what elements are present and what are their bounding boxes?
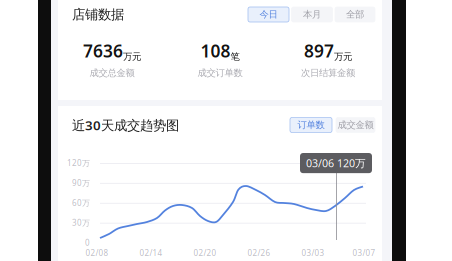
staticText: 02/20 — [193, 248, 216, 258]
staticText: 60万 — [72, 197, 90, 208]
button[interactable]: 本月 — [291, 7, 332, 22]
staticText: 03/06 120万 — [306, 156, 366, 170]
button[interactable]: 订单数 — [290, 117, 332, 132]
staticText: 7636 — [83, 39, 123, 62]
staticText: 次日结算金额 — [301, 67, 355, 79]
staticText: 成交金额 — [337, 119, 373, 131]
staticText: 近30天成交趋势图 — [72, 116, 179, 134]
staticText: 897 — [304, 39, 334, 62]
staticText: 成交订单数 — [197, 67, 242, 79]
staticText: 成交总金额 — [89, 67, 134, 79]
staticText: 03/07 — [352, 248, 375, 258]
staticText: 今日 — [259, 9, 277, 20]
staticText: 108 — [200, 39, 230, 62]
staticText: 03/03 — [301, 248, 324, 258]
staticText: 02/08 — [85, 248, 108, 258]
staticText: 店铺数据 — [72, 6, 124, 23]
staticText: 万元 — [123, 51, 141, 62]
staticText: 订单数 — [297, 119, 324, 131]
staticText: 万元 — [334, 51, 352, 62]
staticText: 120万 — [67, 158, 90, 168]
staticText: 笔 — [230, 51, 239, 62]
staticText: 全部 — [346, 9, 364, 20]
button[interactable]: 今日 — [248, 7, 289, 22]
staticText: 30万 — [72, 217, 90, 228]
staticText: 02/14 — [139, 248, 162, 258]
staticText: 90万 — [72, 178, 90, 188]
staticText: 02/26 — [247, 248, 270, 258]
staticText: 本月 — [303, 9, 321, 20]
button[interactable]: 成交金额 — [336, 117, 375, 132]
staticText: 0 — [85, 237, 90, 248]
button[interactable]: 全部 — [335, 7, 375, 22]
